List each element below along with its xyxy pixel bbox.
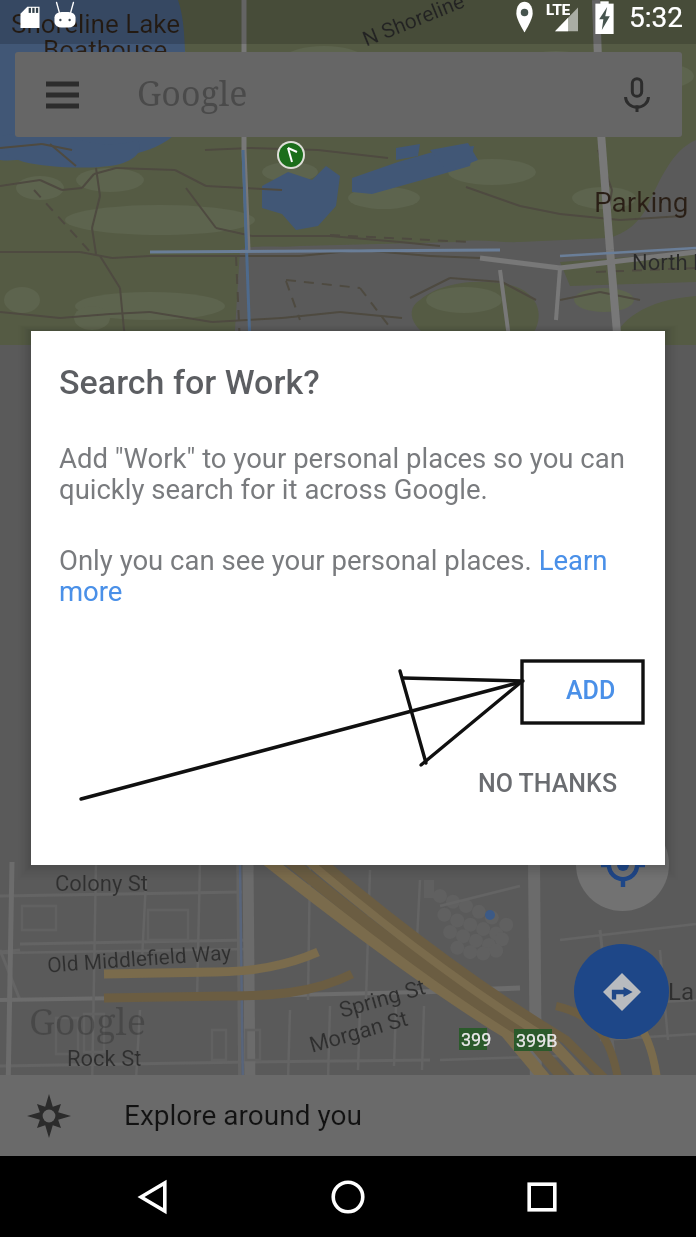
staticText: NO THANKS [478, 769, 618, 798]
staticText: Morgan St [306, 1005, 412, 1058]
staticText: Boathouse [43, 35, 168, 65]
staticText: ADD [566, 676, 616, 705]
staticText: Parking L [594, 186, 696, 219]
staticText: 5:32 [629, 1, 683, 34]
staticText: Google [29, 997, 147, 1046]
button[interactable]: NO THANKS [462, 757, 634, 810]
staticText: Only you can see your personal places. L… [59, 544, 659, 608]
button[interactable]: Recents [502, 1157, 582, 1237]
staticText: La [668, 978, 694, 1006]
button[interactable]: Voice search [614, 72, 660, 118]
staticText: N Shoreline [359, 0, 469, 52]
staticText: Rock St [67, 1046, 142, 1072]
staticText: 399 [461, 1029, 492, 1050]
staticText: Shoreline Lake [11, 9, 181, 39]
staticText: Spring St [336, 974, 429, 1024]
staticText: LTE [546, 1, 571, 19]
button[interactable]: Menu [36, 69, 88, 121]
button[interactable]: My location [576, 818, 669, 911]
staticText: 399B [516, 1030, 558, 1051]
staticText: Old Middlefield Way [46, 941, 233, 978]
staticText: North Ro [632, 250, 696, 276]
button[interactable]: Back [114, 1157, 194, 1237]
button[interactable]: Home [308, 1157, 388, 1237]
button[interactable]: Explore around you [0, 1075, 696, 1156]
button[interactable]: Menu [15, 52, 682, 137]
staticText: Explore around you [124, 1099, 362, 1132]
staticText: Colony St [55, 871, 149, 897]
button[interactable]: ADD [550, 664, 632, 717]
button[interactable]: Directions [574, 944, 669, 1039]
staticText: Google [137, 70, 248, 116]
staticText: Search for Work? [59, 362, 320, 402]
staticText: Add "Work" to your personal places so yo… [59, 442, 659, 506]
